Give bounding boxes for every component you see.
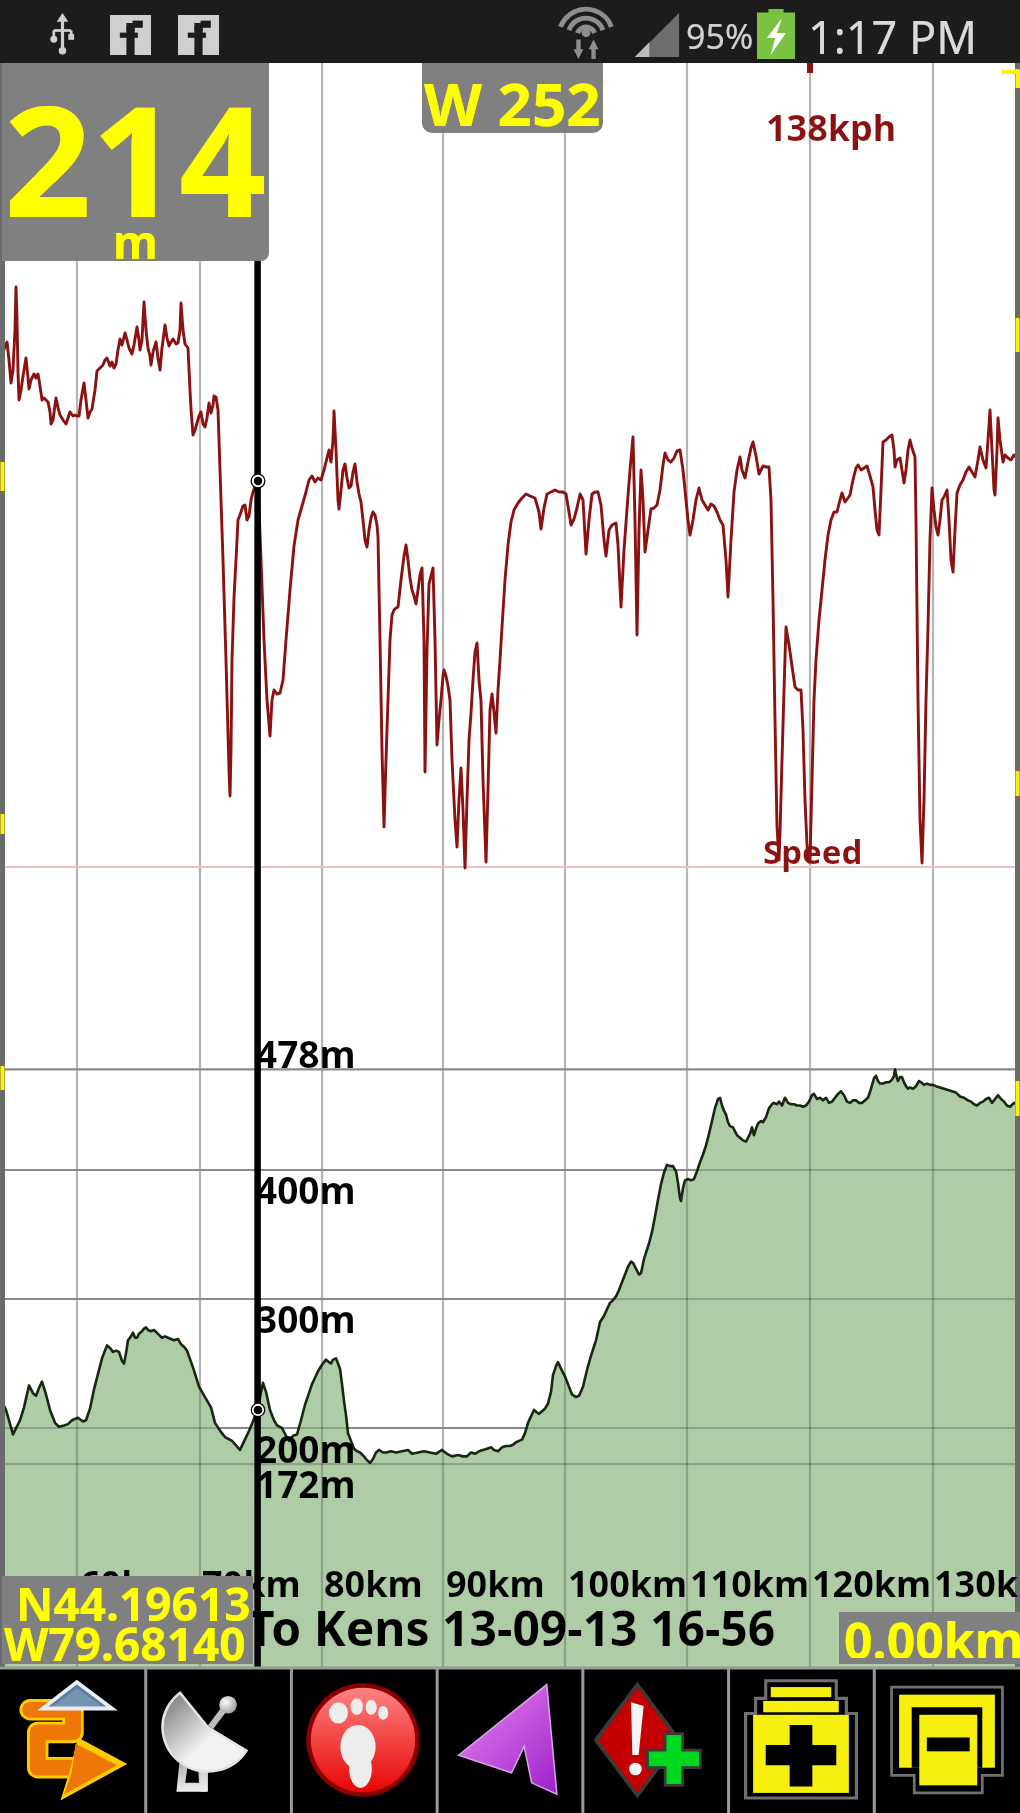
staticText: 214: [4, 63, 267, 251]
staticText: Speed: [763, 829, 863, 874]
button[interactable]: Alerts: [582, 1667, 728, 1813]
staticText: W 252: [424, 63, 601, 132]
staticText: 60km: [80, 1559, 179, 1608]
staticText: 300m: [256, 1293, 356, 1343]
button[interactable]: Navigate: [436, 1667, 582, 1813]
button[interactable]: Coordinates: [2, 1576, 253, 1664]
staticText: 90km: [446, 1559, 545, 1608]
staticText: 80km: [324, 1559, 423, 1608]
staticText: W79.68140: [4, 1612, 246, 1675]
staticText: To Kens 13-09-13 16-56: [247, 1595, 776, 1660]
staticText: 110km: [690, 1559, 810, 1608]
button[interactable]: Window: [874, 1667, 1020, 1813]
button[interactable]: First aid: [728, 1667, 874, 1813]
button[interactable]: Tracks: [290, 1667, 436, 1813]
staticText: 95%: [686, 13, 754, 59]
staticText: 100km: [568, 1559, 688, 1608]
staticText: 1:17 PM: [808, 6, 978, 67]
staticText: m: [113, 210, 158, 261]
button[interactable]: Altitude 214 m: [2, 63, 269, 261]
staticText: 200m: [256, 1423, 356, 1473]
staticText: 172m: [256, 1458, 356, 1508]
button[interactable]: Route: [0, 1667, 145, 1813]
button[interactable]: Satellite: [145, 1667, 290, 1813]
staticText: N44.19613: [16, 1572, 251, 1635]
staticText: 130km: [934, 1559, 1020, 1608]
button[interactable]: Bearing W 252: [422, 63, 603, 133]
staticText: 70km: [202, 1559, 301, 1608]
button[interactable]: Distance 0.00 km: [839, 1612, 1020, 1664]
staticText: 0.00km: [844, 1606, 1020, 1658]
staticText: 400m: [256, 1164, 356, 1214]
staticText: 478m: [256, 1028, 356, 1078]
staticText: 138kph: [766, 103, 897, 152]
staticText: 120km: [812, 1559, 932, 1608]
